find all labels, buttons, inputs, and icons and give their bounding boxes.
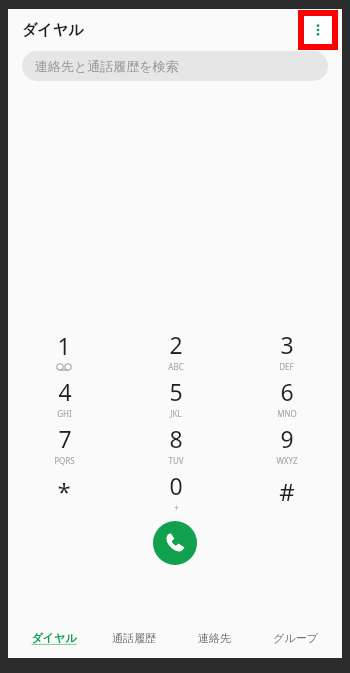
button[interactable]: グループ [255,631,336,645]
staticText: JKL [170,408,182,419]
button[interactable]: 9 [231,421,342,468]
button[interactable]: 8 [120,421,231,468]
staticText: 通話履歴 [112,631,156,645]
staticText: ABC [168,361,184,372]
button[interactable]: 連絡先 [174,631,255,645]
button[interactable]: 3 [231,327,342,374]
staticText: 5 [169,376,183,407]
staticText: 1 [57,330,71,361]
staticText: WXYZ [276,455,298,466]
staticText: MNO [277,408,297,419]
staticText: 2 [169,329,183,360]
staticText: 連絡先 [198,631,231,645]
button[interactable]: ダイヤル [14,631,94,645]
button[interactable]: 通話履歴 [94,631,174,645]
button[interactable]: 4 [8,374,120,421]
staticText: TUV [168,455,184,466]
staticText: 9 [280,423,294,454]
staticText: 0 [169,470,183,501]
button[interactable]: More options [304,16,332,44]
button[interactable]: 7 [8,421,120,468]
staticText: ダイヤル [22,21,84,40]
button[interactable]: 連絡先と通話履歴を検索 [22,51,328,81]
staticText: 連絡先と通話履歴を検索 [35,58,179,74]
button[interactable]: 0 [120,468,231,515]
button[interactable]: Call [153,521,197,565]
staticText: PQRS [54,455,75,466]
staticText: + [174,502,179,513]
button[interactable]: 2 [120,327,231,374]
button[interactable]: # [231,468,342,515]
staticText: DEF [279,361,294,372]
staticText: ダイヤル [31,631,77,645]
button[interactable]: * [8,468,120,515]
staticText: グループ [273,631,318,645]
staticText: 8 [169,423,183,454]
staticText: 3 [280,329,294,360]
button[interactable]: 1 [8,327,120,374]
button[interactable]: 5 [120,374,231,421]
staticText: 7 [58,423,72,454]
button[interactable]: 6 [231,374,342,421]
staticText: 6 [280,376,294,407]
staticText: * [57,475,71,508]
staticText: 4 [58,376,72,407]
staticText: # [279,475,295,508]
staticText: GHI [57,408,72,419]
